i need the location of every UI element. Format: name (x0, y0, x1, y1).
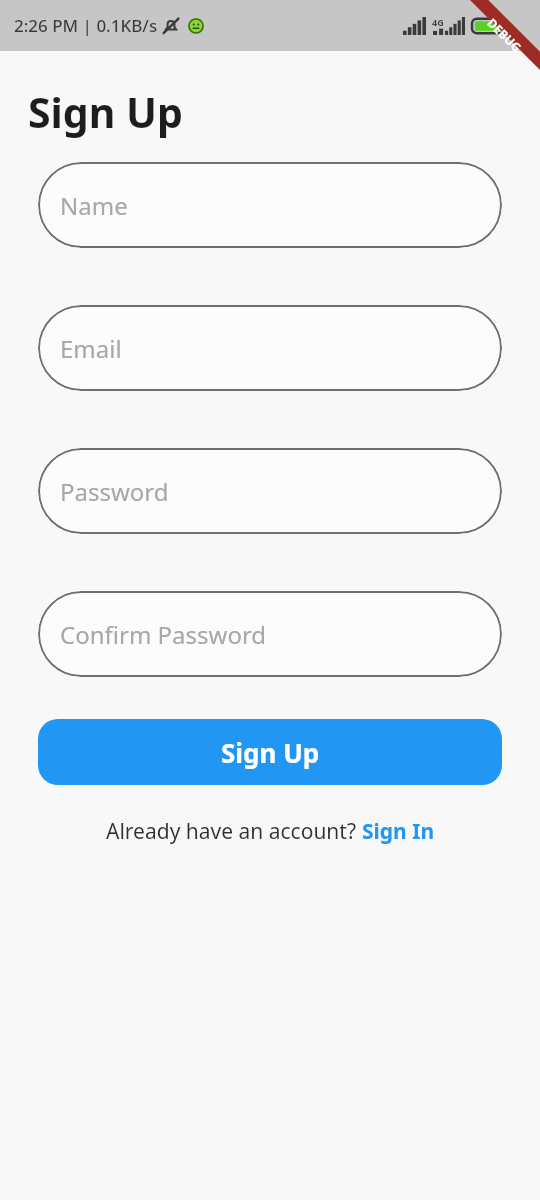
staticText: Already have an account? (106, 817, 362, 846)
staticText: 4G (432, 16, 444, 28)
button[interactable]: Sign In (362, 817, 435, 846)
staticText: Confirm Password (60, 618, 267, 651)
button[interactable]: Email (38, 305, 502, 391)
staticText: 2:26 PM | 0.1KB/s (14, 14, 158, 37)
button[interactable]: Sign Up (38, 719, 502, 785)
staticText: Sign Up (28, 84, 183, 140)
staticText: Email (60, 332, 122, 365)
button[interactable]: Confirm Password (38, 591, 502, 677)
staticText: DEBUG (484, 14, 525, 55)
staticText: Name (60, 189, 128, 222)
button[interactable]: Password (38, 448, 502, 534)
staticText: Sign Up (221, 735, 320, 770)
button[interactable]: Name (38, 162, 502, 248)
staticText: Sign In (362, 817, 435, 846)
staticText: Password (60, 475, 169, 508)
